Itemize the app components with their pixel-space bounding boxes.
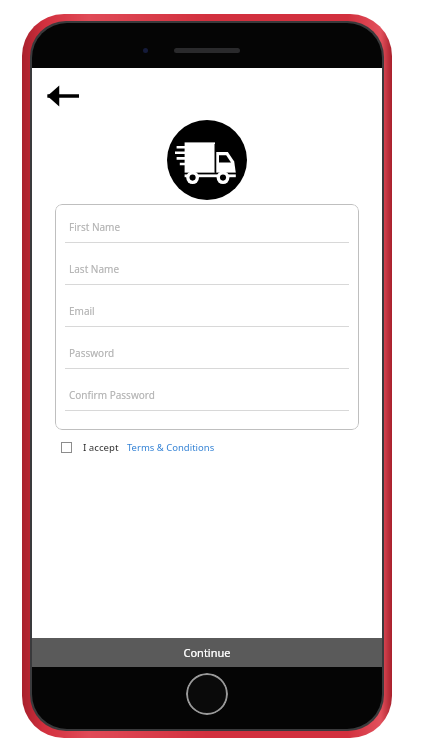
other: Home [186, 673, 228, 715]
staticText: First Name [69, 220, 121, 234]
button[interactable]: Password [65, 338, 349, 368]
staticText: I accept [83, 441, 119, 454]
button[interactable]: I accept [61, 441, 215, 454]
staticText: Password [69, 346, 115, 360]
button[interactable]: First Name [65, 212, 349, 242]
button[interactable]: Email [65, 296, 349, 326]
staticText: Confirm Password [69, 388, 155, 402]
staticText: Email [69, 304, 95, 318]
staticText: Continue [183, 645, 231, 660]
button[interactable]: Back [40, 74, 84, 118]
button[interactable]: Continue [32, 638, 382, 667]
staticText: Terms & Conditions [127, 441, 215, 454]
staticText: Last Name [69, 262, 120, 276]
button[interactable]: Confirm Password [65, 380, 349, 410]
button[interactable]: Last Name [65, 254, 349, 284]
button[interactable]: Terms & Conditions [127, 441, 215, 454]
